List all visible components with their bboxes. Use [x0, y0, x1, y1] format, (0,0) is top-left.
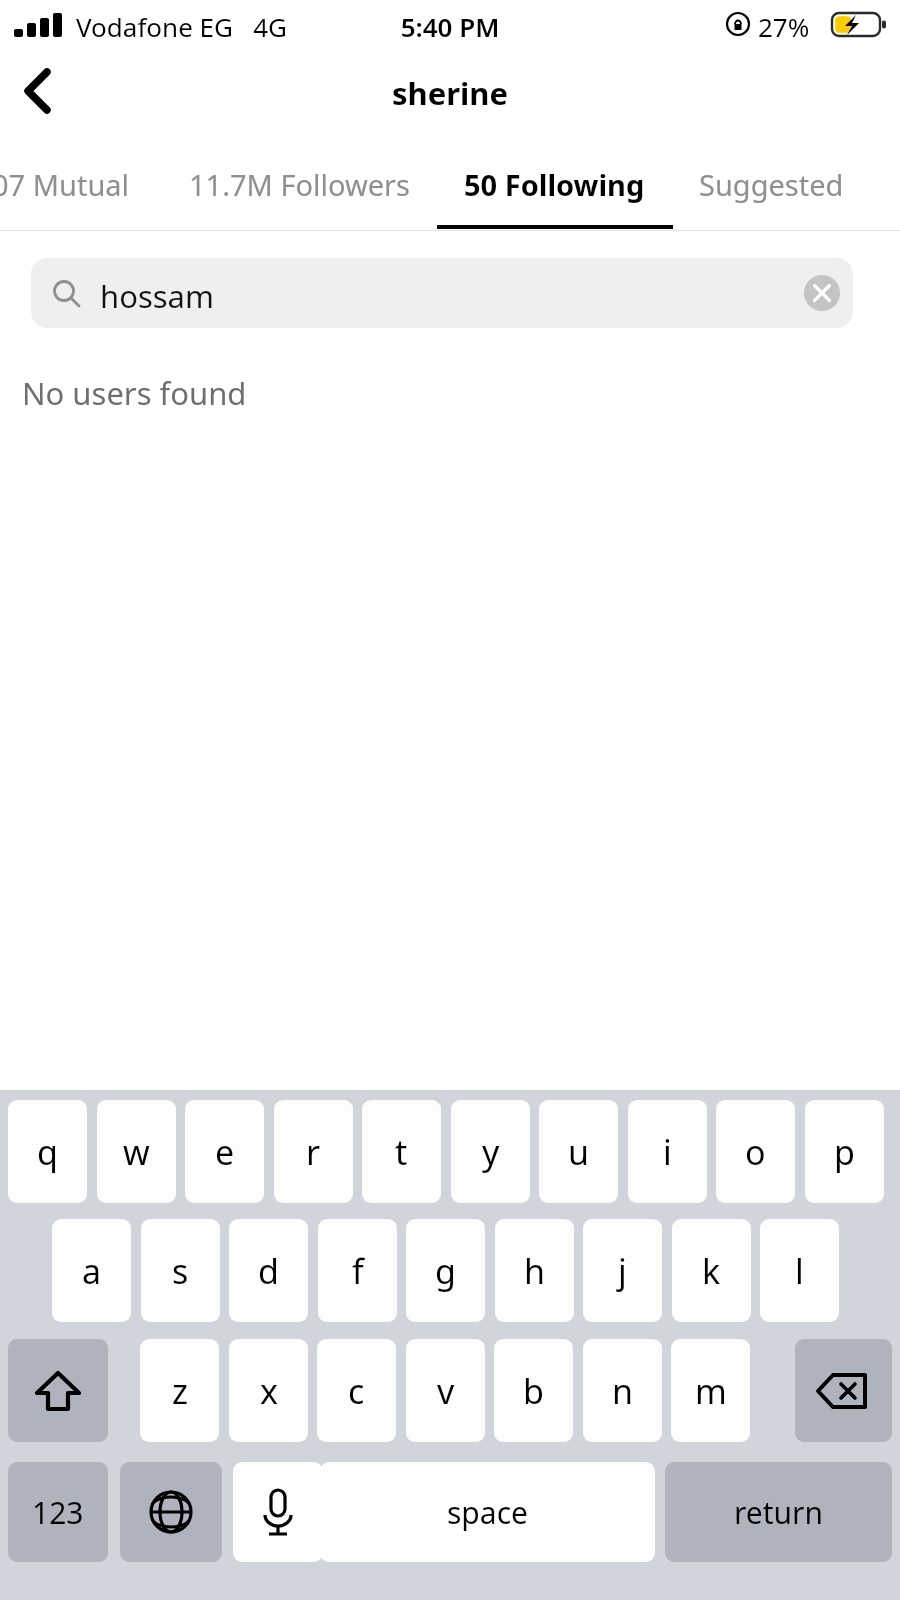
button[interactable]: g: [406, 1219, 485, 1322]
button[interactable]: n: [583, 1339, 662, 1442]
button[interactable]: j: [583, 1219, 662, 1322]
button[interactable]: space: [320, 1462, 655, 1562]
button[interactable]: r: [274, 1100, 353, 1203]
staticText: m: [695, 1368, 727, 1414]
staticText: b: [523, 1368, 544, 1414]
button[interactable]: hossam: [31, 258, 853, 328]
staticText: y: [482, 1129, 500, 1175]
button[interactable]: b: [494, 1339, 573, 1442]
button[interactable]: i: [628, 1100, 707, 1203]
button[interactable]: 11.7M Followers: [189, 165, 410, 204]
staticText: o: [745, 1129, 766, 1175]
staticText: u: [568, 1129, 590, 1175]
button[interactable]: Shift: [8, 1339, 108, 1442]
staticText: e: [215, 1129, 235, 1175]
staticText: w: [123, 1129, 150, 1175]
staticText: r: [306, 1129, 321, 1175]
button[interactable]: p: [805, 1100, 884, 1203]
staticText: g: [435, 1248, 456, 1294]
staticText: i: [663, 1129, 672, 1175]
button[interactable]: d: [229, 1219, 308, 1322]
staticText: No users found: [22, 372, 247, 414]
staticText: d: [258, 1248, 279, 1294]
staticText: space: [447, 1492, 528, 1533]
staticText: return: [734, 1492, 824, 1533]
button[interactable]: k: [672, 1219, 751, 1322]
button[interactable]: Backspace: [795, 1339, 892, 1442]
staticText: x: [260, 1368, 278, 1414]
staticText: n: [612, 1368, 634, 1414]
button[interactable]: v: [406, 1339, 485, 1442]
staticText: t: [395, 1129, 408, 1175]
button[interactable]: Dictate: [233, 1462, 323, 1562]
staticText: sherine: [0, 72, 900, 114]
staticText: s: [172, 1248, 189, 1294]
staticText: k: [702, 1248, 721, 1294]
button[interactable]: u: [539, 1100, 618, 1203]
button[interactable]: x: [229, 1339, 308, 1442]
staticText: 5:40 PM: [0, 9, 900, 44]
button[interactable]: 07 Mutual: [0, 165, 152, 204]
button[interactable]: Suggested: [699, 165, 844, 204]
button[interactable]: s: [141, 1219, 220, 1322]
button[interactable]: a: [52, 1219, 131, 1322]
button[interactable]: return: [665, 1462, 892, 1562]
button[interactable]: y: [451, 1100, 530, 1203]
button[interactable]: Change keyboard: [120, 1462, 222, 1562]
button[interactable]: o: [716, 1100, 795, 1203]
staticText: h: [524, 1248, 546, 1294]
staticText: p: [834, 1129, 855, 1175]
staticText: 123: [32, 1492, 84, 1533]
staticText: c: [348, 1368, 365, 1414]
button[interactable]: c: [317, 1339, 396, 1442]
staticText: v: [437, 1368, 455, 1414]
button[interactable]: h: [495, 1219, 574, 1322]
button[interactable]: f: [318, 1219, 397, 1322]
staticText: z: [172, 1368, 188, 1414]
staticText: f: [352, 1248, 364, 1294]
staticText: Vodafone EG 4G: [76, 9, 288, 44]
staticText: q: [37, 1129, 58, 1175]
button[interactable]: t: [362, 1100, 441, 1203]
staticText: l: [795, 1248, 804, 1294]
staticText: j: [618, 1248, 627, 1294]
button[interactable]: Clear text: [801, 272, 843, 314]
button[interactable]: e: [185, 1100, 264, 1203]
button[interactable]: l: [760, 1219, 839, 1322]
staticText: a: [82, 1248, 102, 1294]
staticText: 27%: [758, 9, 810, 44]
button[interactable]: Back: [4, 56, 76, 126]
button[interactable]: m: [671, 1339, 750, 1442]
button[interactable]: 123: [8, 1462, 108, 1562]
button[interactable]: z: [140, 1339, 219, 1442]
staticText: hossam: [100, 275, 214, 317]
button[interactable]: 50 Following: [464, 165, 645, 204]
button[interactable]: w: [97, 1100, 176, 1203]
button[interactable]: q: [8, 1100, 87, 1203]
